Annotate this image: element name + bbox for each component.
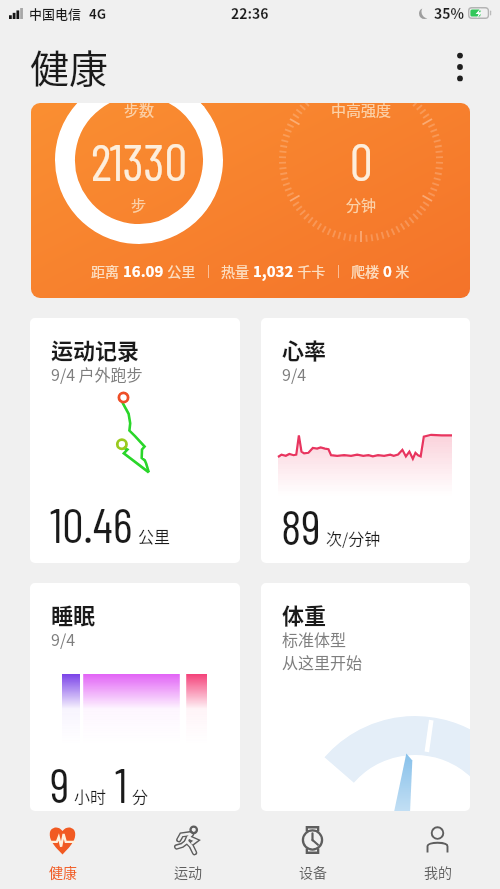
staticText: 中高强度	[331, 103, 392, 121]
staticText: 距离	[91, 261, 123, 281]
button[interactable]: 体重	[261, 583, 470, 811]
staticText: 公里	[164, 261, 196, 281]
staticText: 我的	[424, 862, 452, 882]
button[interactable]: 心率	[261, 318, 470, 563]
staticText: 22:36	[231, 3, 269, 23]
staticText: 睡眠	[51, 598, 96, 630]
staticText: 从这里开始	[282, 650, 363, 673]
button[interactable]: 运动记录	[30, 318, 240, 563]
staticText: 健康	[30, 38, 109, 94]
staticText: 设备	[299, 862, 327, 882]
staticText: 4G	[89, 4, 106, 23]
staticText: 心率	[282, 333, 327, 365]
staticText: 米	[392, 261, 410, 281]
staticText: 21330	[91, 130, 188, 191]
button[interactable]: 设备	[250, 811, 375, 889]
staticText: 千卡	[294, 261, 326, 281]
staticText: 1	[115, 755, 128, 811]
staticText: 爬楼	[351, 261, 383, 281]
button[interactable]: 睡眠	[30, 583, 240, 811]
staticText: 89	[281, 497, 321, 555]
staticText: 9/4	[282, 362, 307, 385]
staticText: 步数	[124, 103, 155, 121]
staticText: 9	[50, 755, 70, 811]
button[interactable]: 健康	[0, 811, 125, 889]
staticText: 9/4 户外跑步	[51, 362, 143, 385]
staticText: 热量	[221, 261, 253, 281]
staticText: 体重	[282, 598, 327, 630]
button[interactable]: 我的	[375, 811, 500, 889]
staticText: 0	[350, 130, 373, 191]
staticText: 健康	[49, 862, 77, 882]
button[interactable]: 步数	[31, 103, 470, 298]
staticText: 1,032	[253, 260, 294, 282]
staticText: 10.46	[50, 495, 133, 553]
staticText: 公里	[138, 524, 171, 547]
staticText: 运动	[174, 862, 202, 882]
staticText: 0	[383, 260, 392, 282]
staticText: 35%	[434, 3, 465, 23]
staticText: 分钟	[346, 194, 377, 216]
staticText: 9/4	[51, 627, 76, 650]
staticText: 次/分钟	[326, 526, 381, 549]
staticText: 16.09	[123, 260, 164, 282]
staticText: 中国电信	[29, 4, 82, 23]
staticText: 运动记录	[51, 333, 140, 365]
staticText: 小时	[74, 784, 107, 807]
staticText: 标准体型	[282, 627, 347, 650]
button[interactable]: 运动	[125, 811, 250, 889]
button[interactable]: More options	[440, 47, 480, 87]
staticText: 步	[131, 194, 147, 216]
staticText: 分	[132, 784, 149, 807]
